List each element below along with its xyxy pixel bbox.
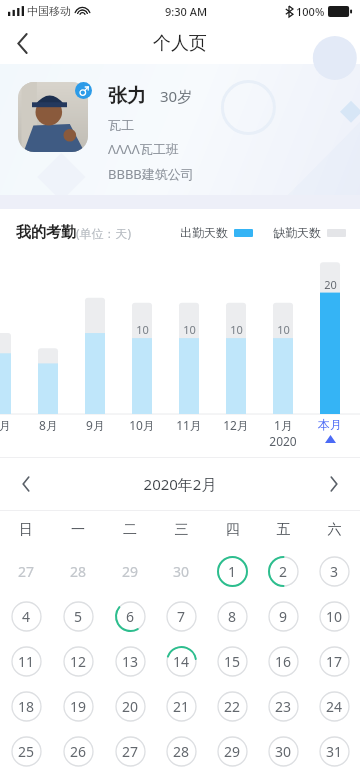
staticText: 16 bbox=[275, 652, 292, 671]
staticText: 6 bbox=[126, 607, 135, 626]
button[interactable]: 20 bbox=[104, 684, 156, 729]
button[interactable]: 29 bbox=[207, 729, 258, 774]
button[interactable]: 30 bbox=[258, 729, 309, 774]
button[interactable]: 15 bbox=[207, 639, 258, 684]
button[interactable]: 26 bbox=[52, 729, 104, 774]
staticText: 9:30 AM bbox=[165, 4, 208, 19]
button[interactable]: 9 bbox=[258, 594, 309, 639]
staticText: 28 bbox=[173, 742, 190, 761]
staticText: 五 bbox=[258, 521, 309, 539]
staticText: 5 bbox=[74, 607, 83, 626]
button[interactable]: 28 bbox=[156, 729, 207, 774]
staticText: 四 bbox=[207, 521, 258, 539]
button[interactable]: Back bbox=[0, 22, 44, 64]
button[interactable]: Previous month bbox=[0, 458, 52, 510]
staticText: 30 bbox=[173, 562, 190, 581]
staticText: 18 bbox=[18, 697, 35, 716]
button[interactable]: 30 bbox=[156, 549, 207, 594]
button[interactable]: 22 bbox=[207, 684, 258, 729]
staticText: 30 bbox=[275, 742, 292, 761]
button[interactable]: 5 bbox=[52, 594, 104, 639]
button[interactable]: 31 bbox=[309, 729, 360, 774]
button[interactable]: 21 bbox=[156, 684, 207, 729]
staticText: 27 bbox=[18, 562, 35, 581]
button[interactable]: 18 bbox=[0, 684, 52, 729]
button[interactable]: 27 bbox=[0, 549, 52, 594]
button[interactable]: 17 bbox=[309, 639, 360, 684]
staticText: 29 bbox=[224, 742, 241, 761]
button[interactable]: 27 bbox=[104, 729, 156, 774]
staticText: 19 bbox=[70, 697, 87, 716]
staticText: 我的考勤 bbox=[16, 223, 76, 242]
staticText: 中国移动 bbox=[27, 4, 71, 18]
button[interactable]: 28 bbox=[52, 549, 104, 594]
staticText: 31 bbox=[326, 742, 343, 761]
staticText: 10 bbox=[136, 322, 149, 337]
button[interactable]: 4 bbox=[0, 594, 52, 639]
staticText: 12 bbox=[70, 652, 87, 671]
button[interactable]: Next month bbox=[308, 458, 360, 510]
button[interactable]: 23 bbox=[258, 684, 309, 729]
staticText: 8月 bbox=[39, 417, 58, 433]
button[interactable]: 8 bbox=[207, 594, 258, 639]
button[interactable]: 7 bbox=[156, 594, 207, 639]
staticText: 2020年2月 bbox=[52, 474, 308, 494]
button[interactable]: 14 bbox=[156, 639, 207, 684]
staticText: 10 bbox=[277, 322, 290, 337]
button[interactable]: 13 bbox=[104, 639, 156, 684]
button[interactable]: 2 bbox=[258, 549, 309, 594]
button[interactable]: 24 bbox=[309, 684, 360, 729]
staticText: 瓦工 bbox=[108, 117, 134, 133]
staticText: (单位：天) bbox=[76, 225, 132, 241]
staticText: 7月 bbox=[0, 417, 11, 433]
staticText: 日 bbox=[0, 521, 52, 539]
button[interactable]: 16 bbox=[258, 639, 309, 684]
staticText: ΛΛΛΛ瓦工班 bbox=[108, 140, 179, 158]
button[interactable]: 6 bbox=[104, 594, 156, 639]
staticText: 六 bbox=[309, 521, 360, 539]
staticText: 14 bbox=[173, 652, 190, 671]
button[interactable]: 12 bbox=[52, 639, 104, 684]
staticText: 15 bbox=[224, 652, 241, 671]
staticText: 20 bbox=[324, 277, 337, 292]
staticText: 本月 bbox=[318, 417, 342, 432]
staticText: 9 bbox=[279, 607, 288, 626]
staticText: 21 bbox=[173, 697, 190, 716]
staticText: 25 bbox=[18, 742, 35, 761]
staticText: 1 bbox=[228, 562, 237, 581]
button[interactable]: 10 bbox=[309, 594, 360, 639]
staticText: 10 bbox=[230, 322, 243, 337]
staticText: 一 bbox=[52, 521, 104, 539]
staticText: 12月 bbox=[223, 417, 249, 433]
staticText: 10 bbox=[183, 322, 196, 337]
button[interactable]: 11 bbox=[0, 639, 52, 684]
staticText: 二 bbox=[104, 521, 156, 539]
button[interactable]: 25 bbox=[0, 729, 52, 774]
button[interactable]: 3 bbox=[309, 549, 360, 594]
staticText: 10月 bbox=[129, 417, 155, 433]
staticText: 28 bbox=[70, 562, 87, 581]
staticText: 4 bbox=[22, 607, 31, 626]
staticText: 26 bbox=[70, 742, 87, 761]
staticText: 9月 bbox=[86, 417, 105, 433]
staticText: 8 bbox=[228, 607, 237, 626]
staticText: 24 bbox=[326, 697, 343, 716]
staticText: 29 bbox=[122, 562, 139, 581]
staticText: 22 bbox=[224, 697, 241, 716]
staticText: 7 bbox=[177, 607, 186, 626]
staticText: 100% bbox=[296, 4, 325, 19]
staticText: 13 bbox=[122, 652, 139, 671]
staticText: 27 bbox=[122, 742, 139, 761]
button[interactable]: 19 bbox=[52, 684, 104, 729]
staticText: 23 bbox=[275, 697, 292, 716]
button[interactable]: 1 bbox=[207, 549, 258, 594]
staticText: 2020 bbox=[269, 433, 297, 449]
staticText: BBBB建筑公司 bbox=[108, 165, 194, 183]
staticText: 11月 bbox=[176, 417, 202, 433]
staticText: 20 bbox=[122, 697, 139, 716]
staticText: 个人页 bbox=[153, 32, 207, 55]
button[interactable]: 29 bbox=[104, 549, 156, 594]
staticText: 10 bbox=[326, 607, 343, 626]
staticText: 三 bbox=[156, 521, 207, 539]
staticText: 1月 bbox=[274, 417, 293, 433]
